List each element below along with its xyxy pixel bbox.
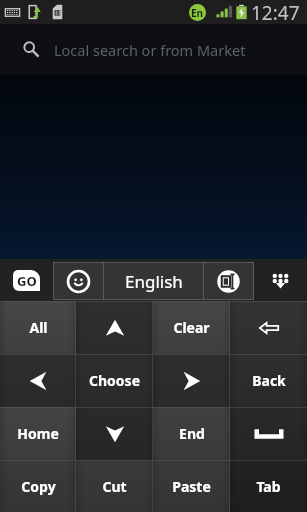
staticText: Choose [89,371,140,390]
button[interactable]: Move right [153,354,230,407]
button[interactable]: End [153,407,230,460]
button[interactable]: Back [230,354,307,407]
staticText: Copy [21,477,56,496]
staticText: Clear [173,318,210,337]
button[interactable]: English [104,263,203,299]
button[interactable]: Delete [230,301,307,354]
staticText: Tab [256,477,281,496]
staticText: All [29,318,48,337]
button[interactable]: Tab [230,460,307,512]
button[interactable]: Choose [76,354,153,407]
staticText: Paste [172,477,211,496]
button[interactable]: Copy [0,460,76,512]
button[interactable]: Clear [153,301,230,354]
button[interactable]: Move up [76,301,153,354]
button[interactable]: Space [230,407,307,460]
staticText: GO [17,272,37,290]
button[interactable]: Cut [76,460,153,512]
staticText: Home [17,424,59,443]
button[interactable]: Resize keyboard [204,263,253,299]
staticText: En [191,6,204,20]
staticText: Local search or from Market [54,40,246,60]
button[interactable]: Move left [0,354,76,407]
button[interactable]: Local search or from Market [0,24,307,75]
button[interactable]: More options [254,259,307,301]
staticText: English [125,270,183,293]
button[interactable]: Paste [153,460,230,512]
button[interactable]: All [0,301,76,354]
button[interactable]: Home [0,407,76,460]
staticText: Cut [102,477,127,496]
staticText: End [179,424,205,443]
staticText: Back [252,371,286,390]
staticText: 12:47 [251,0,300,24]
button[interactable]: GO [0,259,53,301]
button[interactable]: Emoji [54,263,103,299]
button[interactable]: Move down [76,407,153,460]
